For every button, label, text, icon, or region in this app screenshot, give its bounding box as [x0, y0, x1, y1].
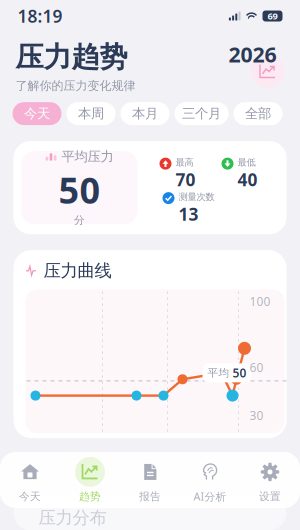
staticText: 平均 [207, 366, 229, 379]
staticText: 报告 [139, 490, 161, 503]
button[interactable]: 报告 [120, 457, 180, 503]
button[interactable]: AI分析 [180, 456, 240, 504]
staticText: 100 [249, 293, 270, 309]
staticText: 三个月 [182, 105, 221, 122]
staticText: 50 [58, 166, 100, 214]
staticText: 本月 [132, 105, 158, 122]
button[interactable]: 今天 [0, 457, 60, 503]
staticText: 2026 [228, 40, 276, 68]
button[interactable]: 本周 [66, 102, 115, 125]
staticText: 分 [74, 214, 85, 227]
staticText: 设置 [259, 490, 281, 503]
staticText: 70 [175, 168, 195, 191]
staticText: 压力趋势 [15, 40, 127, 74]
button[interactable]: 本月 [120, 102, 169, 125]
staticText: AI分析 [193, 489, 226, 504]
staticText: 了解你的压力变化规律 [15, 78, 135, 93]
staticText: 60 [249, 359, 263, 375]
staticText: 压力曲线 [43, 260, 111, 281]
button[interactable]: 今天 [12, 102, 61, 125]
staticText: 测量次数 [178, 191, 214, 203]
staticText: 平均压力 [61, 148, 113, 165]
staticText: 压力分布 [38, 507, 106, 528]
staticText: 30 [249, 407, 263, 423]
staticText: 13 [178, 203, 198, 226]
staticText: 今天 [24, 105, 50, 122]
button[interactable]: 趋势 [60, 457, 120, 503]
staticText: 趋势 [79, 490, 101, 503]
button[interactable]: 全部 [233, 102, 282, 125]
staticText: 40 [237, 168, 257, 191]
staticText: 18:19 [17, 4, 62, 27]
staticText: 最低 [237, 157, 255, 168]
staticText: 69 [267, 10, 277, 22]
staticText: 本周 [78, 105, 104, 122]
button[interactable]: 设置 [240, 457, 300, 503]
staticText: 最高 [175, 157, 193, 168]
staticText: 全部 [245, 105, 271, 122]
button[interactable]: 三个月 [174, 102, 228, 125]
staticText: 今天 [19, 490, 41, 503]
staticText: 50 [232, 365, 246, 381]
